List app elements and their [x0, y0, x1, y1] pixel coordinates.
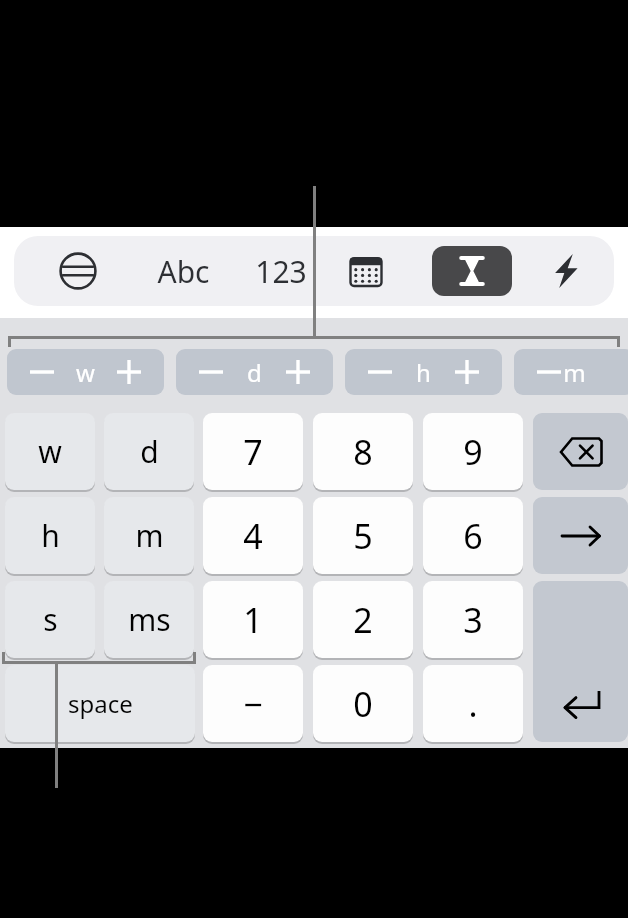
- staticText: 2: [353, 597, 373, 643]
- staticText: d: [140, 431, 159, 472]
- staticText: s: [43, 599, 58, 640]
- staticText: w: [38, 431, 62, 472]
- staticText: m: [563, 356, 586, 389]
- button[interactable]: 2: [313, 581, 413, 658]
- button[interactable]: Duration keyboard: [432, 246, 512, 296]
- button[interactable]: Date keyboard: [344, 249, 388, 293]
- button[interactable]: Decrease w: [7, 349, 164, 395]
- staticText: 1: [243, 597, 263, 643]
- staticText: d: [247, 356, 262, 389]
- button[interactable]: 1: [203, 581, 303, 658]
- staticText: 0: [353, 681, 373, 727]
- button[interactable]: Decrease m: [514, 349, 628, 395]
- button[interactable]: Next field: [533, 497, 628, 574]
- staticText: ms: [128, 599, 171, 640]
- button[interactable]: Increase w: [106, 349, 152, 395]
- staticText: 9: [463, 429, 483, 475]
- button[interactable]: 6: [423, 497, 523, 574]
- button[interactable]: Decrease m: [526, 349, 572, 395]
- button[interactable]: ms: [104, 581, 194, 658]
- button[interactable]: 0: [313, 665, 413, 742]
- button[interactable]: d: [104, 413, 194, 490]
- button[interactable]: Backspace: [533, 413, 628, 490]
- button[interactable]: Abc: [140, 247, 226, 295]
- button[interactable]: 7: [203, 413, 303, 490]
- staticText: 5: [353, 513, 373, 559]
- button[interactable]: Decrease h: [357, 349, 403, 395]
- staticText: 3: [463, 597, 483, 643]
- button[interactable]: −: [203, 665, 303, 742]
- button[interactable]: 8: [313, 413, 413, 490]
- button[interactable]: Decrease h: [345, 349, 502, 395]
- staticText: .: [468, 681, 478, 727]
- staticText: h: [41, 515, 60, 556]
- button[interactable]: Decrease d: [176, 349, 333, 395]
- staticText: h: [416, 356, 431, 389]
- staticText: 123: [255, 251, 307, 292]
- staticText: 7: [243, 429, 263, 475]
- staticText: w: [76, 356, 95, 389]
- button[interactable]: Shortcuts: [542, 247, 590, 295]
- button[interactable]: Return: [533, 581, 628, 742]
- button[interactable]: Keyboard options: [54, 247, 102, 295]
- button[interactable]: Increase h: [444, 349, 490, 395]
- staticText: space: [68, 687, 133, 720]
- button[interactable]: .: [423, 665, 523, 742]
- button[interactable]: Decrease d: [188, 349, 234, 395]
- button[interactable]: Decrease w: [19, 349, 65, 395]
- button[interactable]: Increase d: [275, 349, 321, 395]
- button[interactable]: w: [5, 413, 95, 490]
- button[interactable]: 123: [238, 247, 324, 295]
- staticText: 4: [243, 513, 263, 559]
- staticText: −: [243, 681, 263, 727]
- button[interactable]: 9: [423, 413, 523, 490]
- staticText: m: [135, 515, 164, 556]
- staticText: 6: [463, 513, 483, 559]
- button[interactable]: 5: [313, 497, 413, 574]
- button[interactable]: s: [5, 581, 95, 658]
- button[interactable]: 4: [203, 497, 303, 574]
- button[interactable]: h: [5, 497, 95, 574]
- button[interactable]: m: [104, 497, 194, 574]
- button[interactable]: 3: [423, 581, 523, 658]
- staticText: Abc: [157, 251, 210, 292]
- button[interactable]: space: [5, 665, 195, 742]
- staticText: 8: [353, 429, 373, 475]
